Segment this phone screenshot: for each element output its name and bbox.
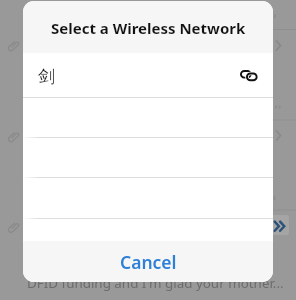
staticText: Cancel (120, 250, 177, 274)
staticText: DFID funding and I'm glad your mother... (27, 274, 284, 292)
button[interactable]: 剑 (23, 53, 273, 97)
other: Secured network (240, 70, 259, 82)
staticText: Select a Wireless Network (51, 18, 246, 38)
button[interactable]: Cancel (23, 241, 273, 282)
staticText: 剑 (38, 66, 55, 87)
